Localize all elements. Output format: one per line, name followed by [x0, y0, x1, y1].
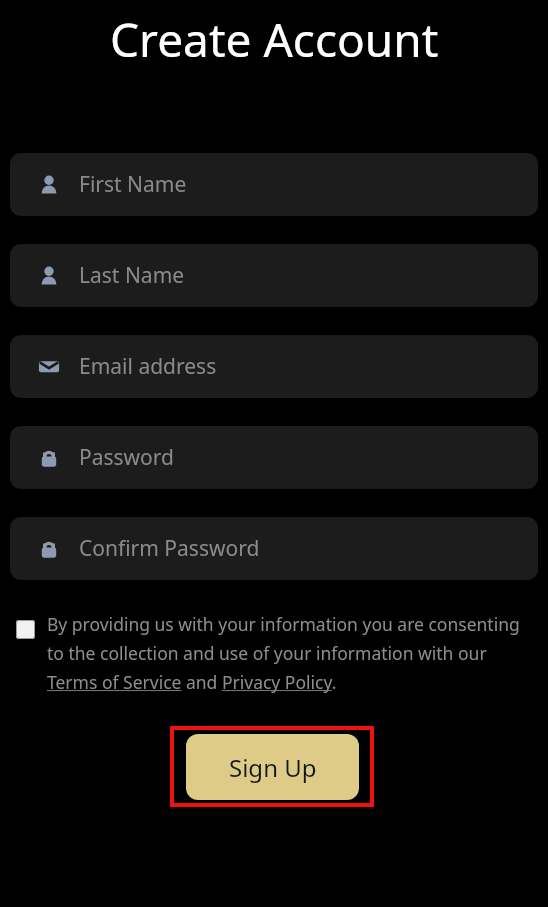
staticText: Confirm Password: [79, 534, 260, 563]
staticText: Create Account: [110, 8, 439, 71]
other: Consent checkbox: [16, 620, 35, 639]
staticText: Last Name: [79, 261, 185, 290]
staticText: Password: [79, 443, 174, 472]
button[interactable]: Sign Up: [170, 726, 374, 807]
staticText: First Name: [79, 170, 187, 199]
staticText: By providing us with your information yo…: [47, 612, 532, 694]
button[interactable]: Consent checkbox: [16, 612, 532, 694]
staticText: Email address: [79, 352, 217, 381]
button[interactable]: Confirm Password: [10, 517, 538, 580]
button[interactable]: Password: [10, 426, 538, 489]
button[interactable]: Last Name: [10, 244, 538, 307]
button[interactable]: Email address: [10, 335, 538, 398]
staticText: Sign Up: [229, 751, 317, 784]
button[interactable]: First Name: [10, 153, 538, 216]
